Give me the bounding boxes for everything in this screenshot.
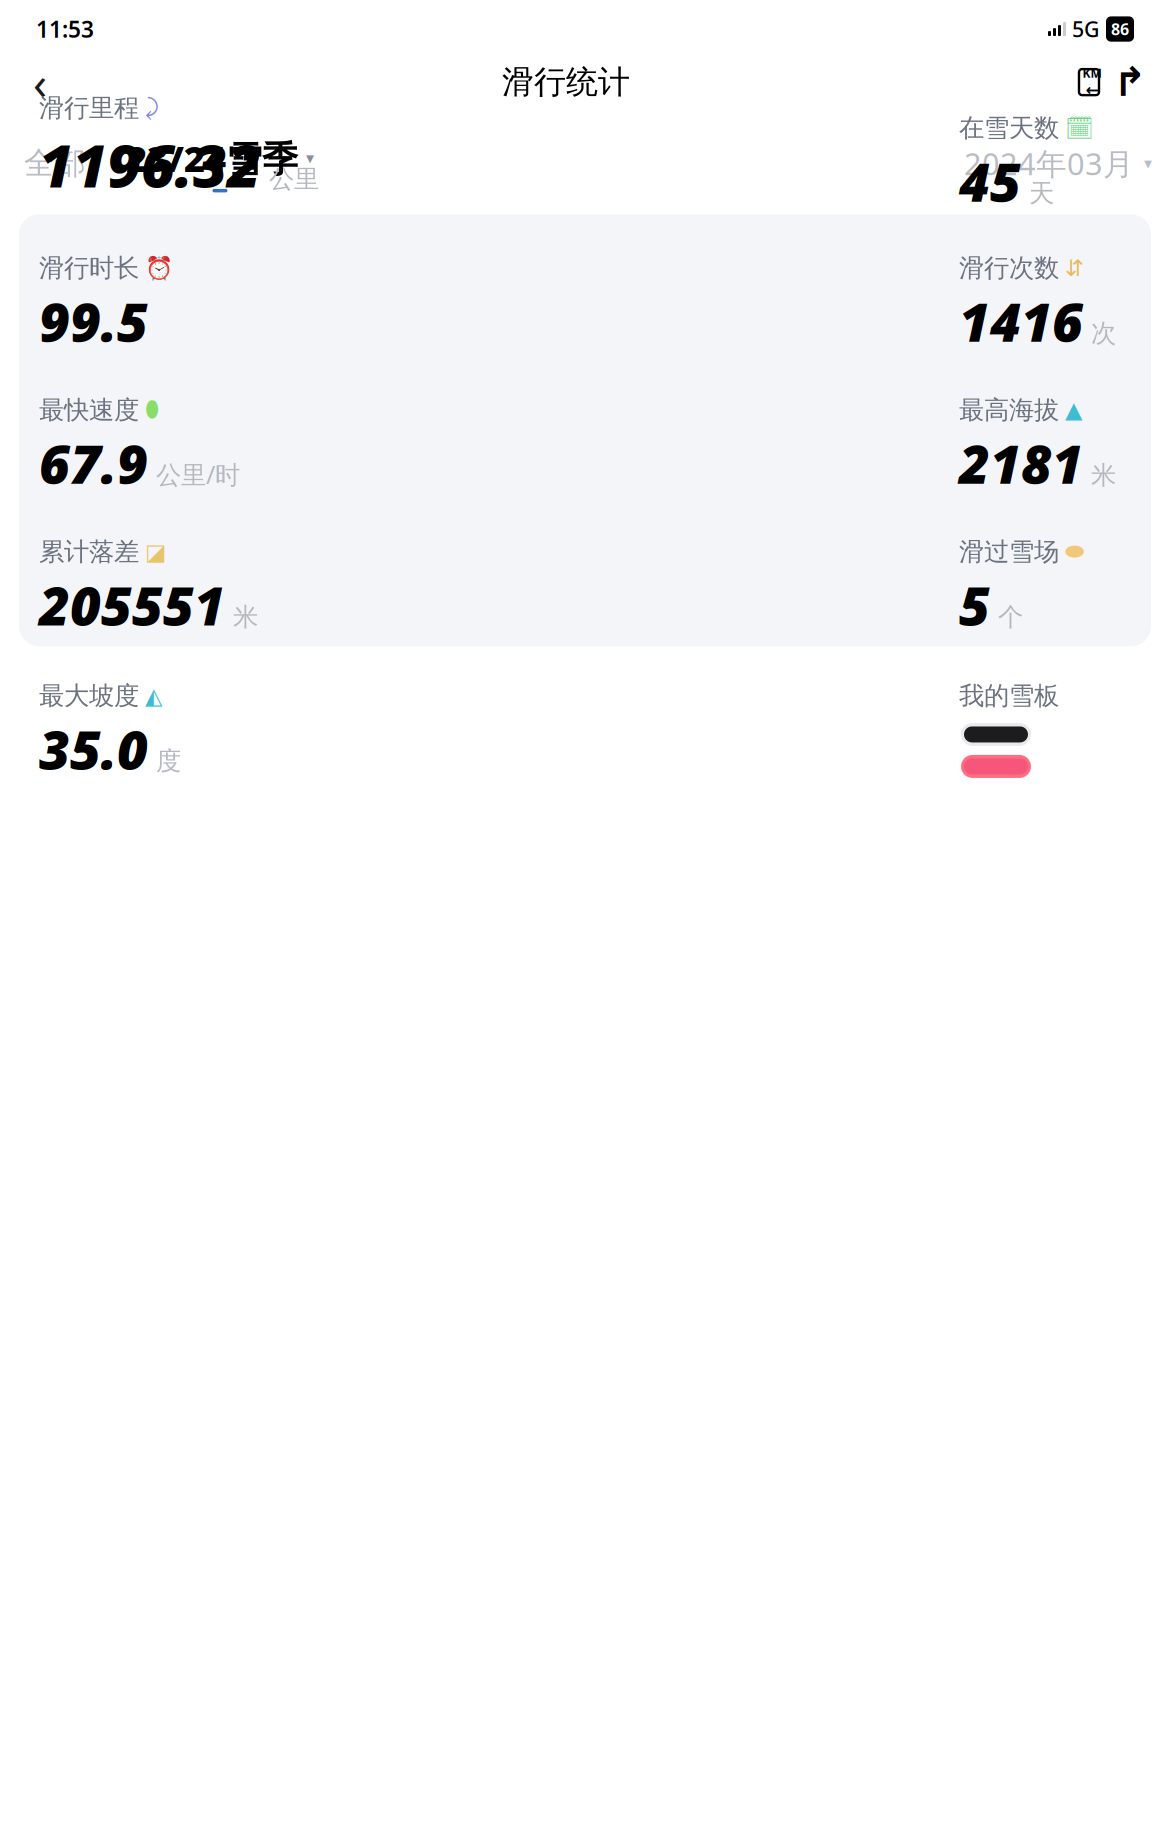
staticText: 天 [1029, 178, 1054, 209]
staticText: KM [1082, 65, 1101, 81]
button[interactable]: 23/24雪季 [126, 134, 314, 192]
staticText: ↱ [1113, 59, 1147, 105]
staticText: 最高海拔 [959, 394, 1059, 425]
staticText: ⏰ [145, 255, 173, 281]
staticText: ⬬ [1065, 541, 1084, 563]
staticText: ◪ [145, 539, 166, 565]
staticText: 2181 [959, 428, 1083, 498]
staticText: 次 [1091, 318, 1116, 349]
staticText: 米 [233, 602, 258, 633]
staticText: 滑行统计 [502, 62, 630, 102]
staticText: 🗓 [1065, 115, 1094, 141]
button[interactable]: Back [18, 60, 62, 104]
staticText: ⬮ [145, 399, 159, 421]
staticText: 累计落差 [39, 536, 139, 567]
staticText: ▾ [1144, 154, 1152, 172]
staticText: ← [1085, 81, 1098, 99]
staticText: ‹ [33, 52, 47, 112]
staticText: ◭ [145, 683, 162, 709]
button[interactable]: Share [1108, 62, 1152, 102]
staticText: 2024年03月 [964, 143, 1134, 184]
staticText: 公里/时 [156, 457, 240, 491]
staticText: 最快速度 [39, 394, 139, 425]
staticText: 滑行里程 [39, 93, 139, 124]
staticText: ▲ [1065, 397, 1082, 423]
staticText: 个 [998, 602, 1023, 633]
staticText: 5G [1072, 15, 1100, 43]
staticText: 滑行次数 [959, 252, 1059, 284]
staticText: 11:53 [36, 14, 94, 44]
staticText: 滑过雪场 [959, 536, 1059, 567]
button[interactable]: 2024年03月 [964, 143, 1152, 184]
staticText: 公里 [269, 163, 319, 194]
button[interactable]: 全部 [18, 144, 92, 182]
staticText: ▾ [306, 149, 314, 167]
staticText: 我的雪板 [959, 680, 1059, 711]
staticText: 全部 [24, 144, 86, 182]
staticText: 23/24雪季 [126, 134, 298, 182]
staticText: 67.9 [39, 428, 148, 498]
staticText: 35.0 [39, 713, 148, 784]
staticText: 86 [1111, 18, 1129, 40]
staticText: 最大坡度 [39, 680, 139, 711]
staticText: 度 [156, 745, 181, 777]
staticText: 1196.32 [39, 126, 261, 204]
staticText: 5 [959, 569, 990, 640]
staticText: ⇵ [1065, 255, 1084, 281]
staticText: 45 [959, 146, 1021, 216]
staticText: 205551 [39, 569, 225, 640]
staticText: 1416 [959, 286, 1083, 356]
button[interactable]: Export kilometres [1070, 62, 1108, 102]
staticText: ⤸ [145, 97, 159, 119]
staticText: 米 [1091, 460, 1116, 491]
staticText: 在雪天数 [959, 113, 1059, 144]
staticText: 99.5 [39, 286, 148, 356]
staticText: 滑行时长 [39, 252, 139, 284]
